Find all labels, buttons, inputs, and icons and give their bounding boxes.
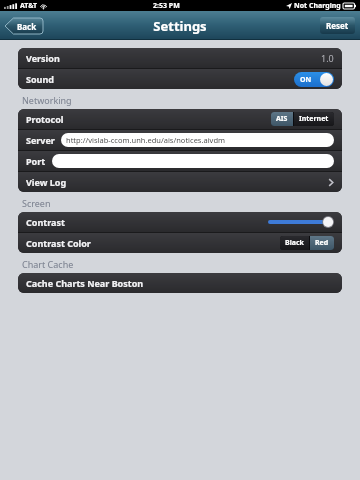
button[interactable]: View Log: [18, 172, 342, 192]
staticText: Sound: [26, 73, 54, 85]
staticText: Cache Charts Near Boston: [26, 277, 144, 289]
staticText: Contrast: [26, 216, 65, 228]
button[interactable]: Port: [18, 151, 342, 171]
button[interactable]: Contrast slider: [268, 215, 334, 229]
staticText: Settings: [153, 17, 207, 35]
button[interactable]: Version: [18, 48, 342, 68]
button[interactable]: Reset: [320, 17, 355, 34]
staticText: ON: [300, 75, 312, 85]
staticText: Protocol: [26, 113, 64, 125]
button[interactable]: Back: [5, 17, 43, 35]
staticText: Server: [26, 134, 55, 146]
button[interactable]: Red: [310, 236, 334, 250]
button[interactable]: Contrast: [18, 212, 342, 232]
staticText: Internet: [299, 114, 329, 124]
staticText: Contrast Color: [26, 237, 91, 249]
staticText: Not Charging: [294, 1, 341, 11]
staticText: 1.0: [321, 52, 334, 64]
other: View Log: [328, 178, 334, 187]
button[interactable]: Black: [280, 236, 309, 250]
button[interactable]: Contrast Color: [18, 233, 342, 253]
staticText: Back: [17, 21, 37, 32]
staticText: Port: [26, 155, 46, 167]
button[interactable]: Protocol: [18, 109, 342, 129]
staticText: http://vislab-ccom.unh.edu/ais/notices.a…: [66, 135, 226, 145]
staticText: Red: [315, 238, 329, 248]
staticText: Version: [26, 52, 60, 64]
staticText: View Log: [26, 176, 67, 188]
button[interactable]: Internet: [294, 112, 334, 126]
staticText: AIS: [276, 114, 288, 124]
staticText: Black: [285, 238, 304, 248]
staticText: 2:53 PM: [153, 1, 180, 11]
staticText: Chart Cache: [22, 258, 74, 270]
button[interactable]: AIS: [271, 112, 293, 126]
staticText: Networking: [22, 94, 72, 106]
staticText: AT&T: [20, 1, 38, 11]
staticText: Reset: [326, 20, 349, 31]
button[interactable]: Sound: [18, 69, 342, 89]
button[interactable]: [52, 154, 334, 168]
staticText: Screen: [22, 197, 51, 209]
button[interactable]: Server: [18, 130, 342, 150]
button[interactable]: Sound toggle, on: [294, 72, 334, 87]
button[interactable]: http://vislab-ccom.unh.edu/ais/notices.a…: [61, 133, 334, 147]
button[interactable]: Cache Charts Near Boston: [18, 273, 342, 293]
